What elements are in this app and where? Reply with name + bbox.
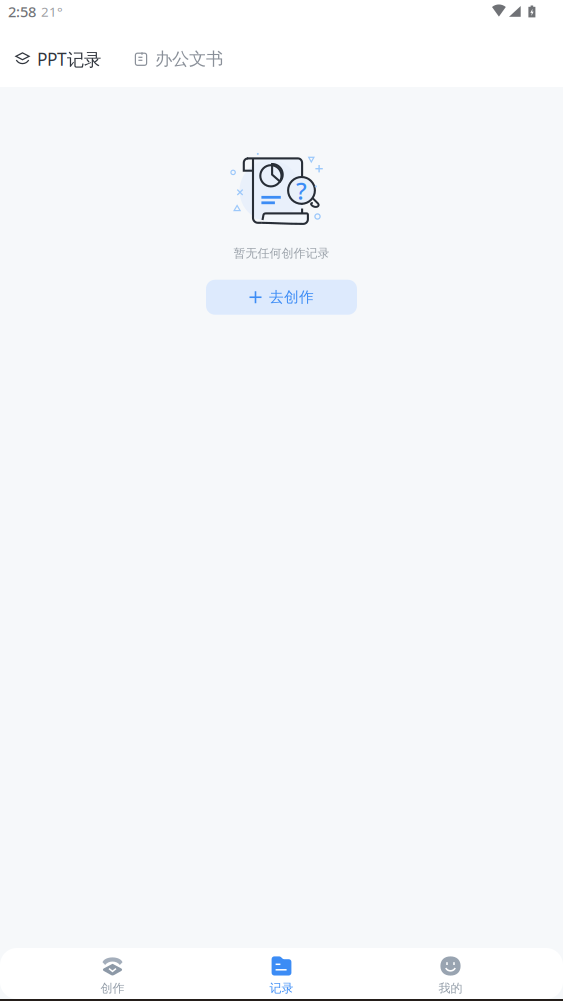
staticText: PPT记录 — [37, 47, 101, 70]
staticText: 创作 — [100, 981, 124, 996]
staticText: 我的 — [438, 981, 462, 996]
staticText: 记录 — [269, 981, 293, 996]
button[interactable]: PPT记录 — [15, 39, 101, 79]
staticText: ? — [296, 174, 307, 206]
button[interactable]: 去创作 — [206, 280, 357, 315]
staticText: 办公文书 — [155, 48, 223, 70]
button[interactable]: 我的 — [366, 956, 535, 996]
staticText: 21° — [41, 3, 63, 20]
staticText: 暂无任何创作记录 — [233, 246, 329, 261]
staticText: 2:58 — [8, 2, 36, 21]
staticText: 去创作 — [269, 288, 314, 306]
button[interactable]: 创作 — [28, 956, 197, 996]
button[interactable]: 办公文书 — [134, 39, 223, 79]
button[interactable]: 记录 — [197, 956, 366, 996]
